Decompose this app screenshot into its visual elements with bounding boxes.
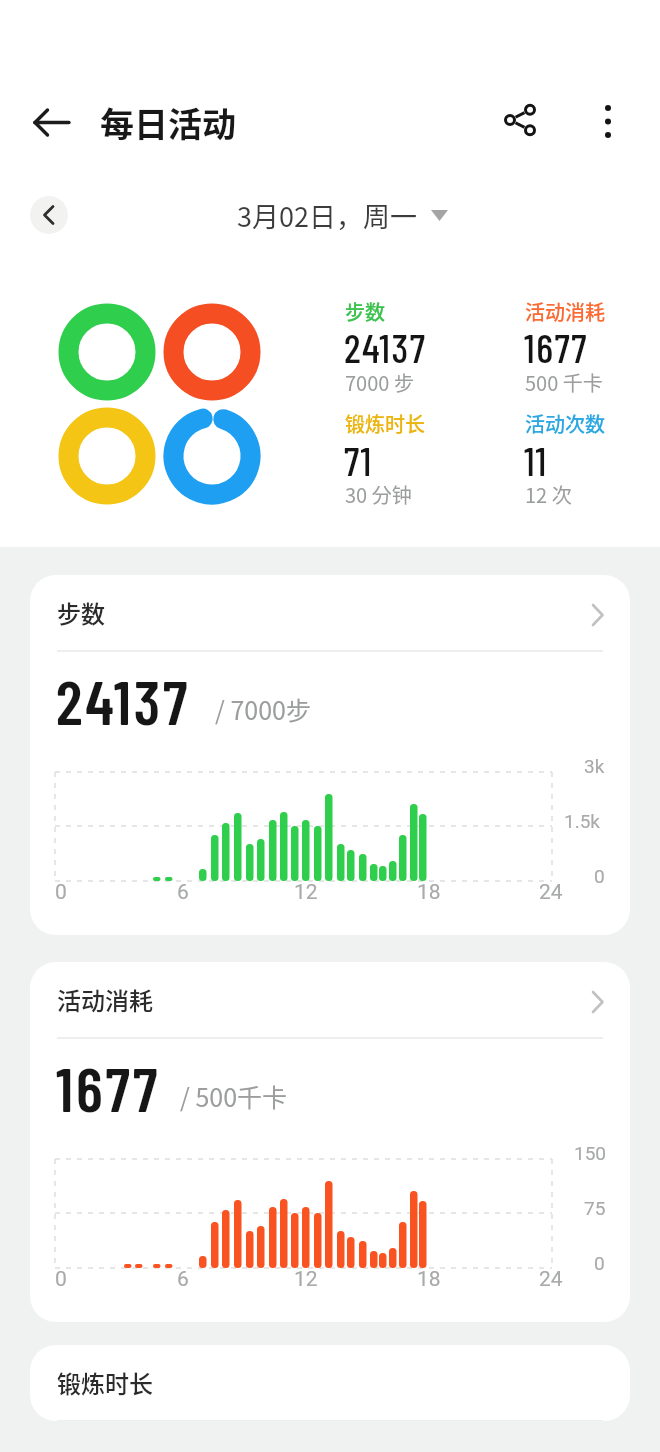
staticText: 18	[417, 880, 441, 905]
staticText: 12 次	[525, 480, 572, 509]
staticText: 活动次数	[525, 409, 605, 438]
staticText: / 7000步	[215, 691, 311, 727]
staticText: 11	[524, 436, 548, 484]
staticText: 6	[177, 880, 189, 905]
button[interactable]: 3月02日，周一	[0, 196, 660, 234]
staticText: 500 千卡	[525, 368, 603, 397]
button[interactable]	[30, 196, 68, 234]
staticText: 18	[417, 1267, 441, 1292]
staticText: 0	[55, 1267, 67, 1292]
staticText: 150	[574, 1142, 607, 1164]
staticText: 24	[539, 880, 563, 905]
staticText: 12	[294, 1267, 318, 1292]
staticText: 3月02日，周一	[237, 196, 417, 234]
staticText: 24137	[56, 663, 191, 737]
staticText: 3k	[584, 755, 605, 777]
staticText: 锻炼时长	[57, 1365, 153, 1400]
staticText: 步数	[345, 297, 385, 326]
staticText: 1677	[56, 1050, 161, 1124]
staticText: 75	[584, 1197, 606, 1219]
staticText: 24137	[344, 323, 427, 371]
staticText: 24	[539, 1267, 563, 1292]
staticText: 7000 步	[345, 368, 414, 397]
staticText: / 500千卡	[180, 1078, 288, 1114]
staticText: 1677	[524, 323, 588, 371]
staticText: 30 分钟	[345, 480, 412, 509]
button[interactable]	[496, 98, 544, 142]
staticText: 锻炼时长	[345, 409, 425, 438]
button[interactable]: 锻炼时长	[30, 1345, 630, 1421]
button[interactable]	[20, 95, 84, 147]
staticText: 71	[344, 436, 373, 484]
staticText: 0	[594, 1252, 605, 1274]
button[interactable]	[588, 96, 628, 144]
staticText: 步数	[57, 595, 105, 630]
button[interactable]: 步数	[30, 575, 630, 935]
staticText: 6	[177, 1267, 189, 1292]
staticText: 12	[294, 880, 318, 905]
staticText: 每日活动	[100, 98, 236, 147]
button[interactable]: 活动消耗	[30, 962, 630, 1322]
staticText: 0	[594, 865, 605, 887]
staticText: 1.5k	[564, 810, 600, 832]
staticText: 活动消耗	[57, 982, 153, 1017]
staticText: 活动消耗	[525, 297, 605, 326]
staticText: 0	[55, 880, 67, 905]
